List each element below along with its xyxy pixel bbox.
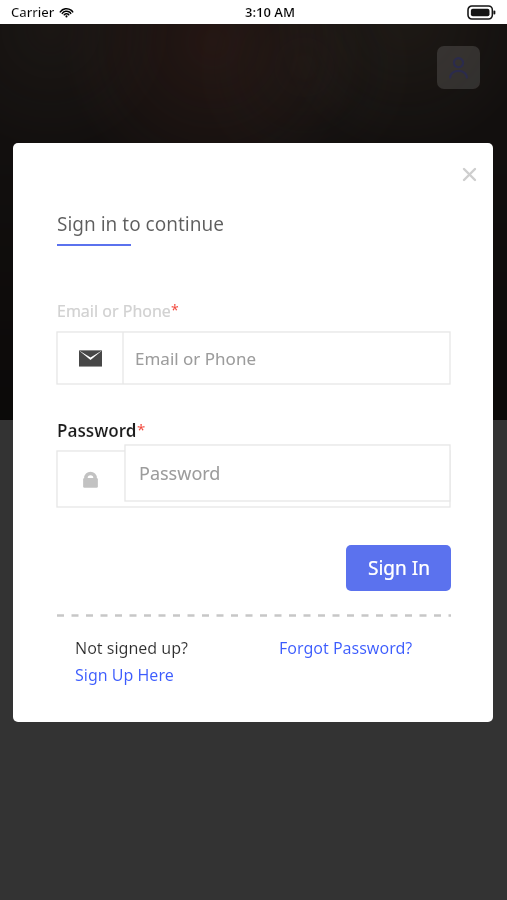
staticText: 3:10 AM <box>245 3 296 21</box>
staticText: Sign Up Here <box>75 664 174 686</box>
staticText: Sign In <box>368 555 430 581</box>
button[interactable]: Sign Up Here <box>75 664 174 686</box>
button[interactable]: Sign In <box>346 545 451 591</box>
staticText: Email or Phone <box>57 300 171 322</box>
button[interactable] <box>57 451 123 507</box>
staticText: Email or Phone <box>135 347 256 370</box>
button[interactable]: Password <box>125 445 450 501</box>
staticText: Not signed up? <box>75 637 188 659</box>
staticText: Password <box>57 419 137 442</box>
button[interactable]: Close <box>451 156 487 192</box>
staticText: Password <box>139 461 221 486</box>
button[interactable]: Account <box>437 46 480 89</box>
staticText: Forgot Password? <box>279 637 413 659</box>
staticText: Carrier <box>11 3 55 21</box>
button[interactable]: Email or Phone <box>57 332 450 384</box>
staticText: Sign in to continue <box>57 211 224 237</box>
staticText: * <box>137 419 146 439</box>
button[interactable]: Forgot Password? <box>279 637 413 659</box>
staticText: * <box>171 300 179 319</box>
